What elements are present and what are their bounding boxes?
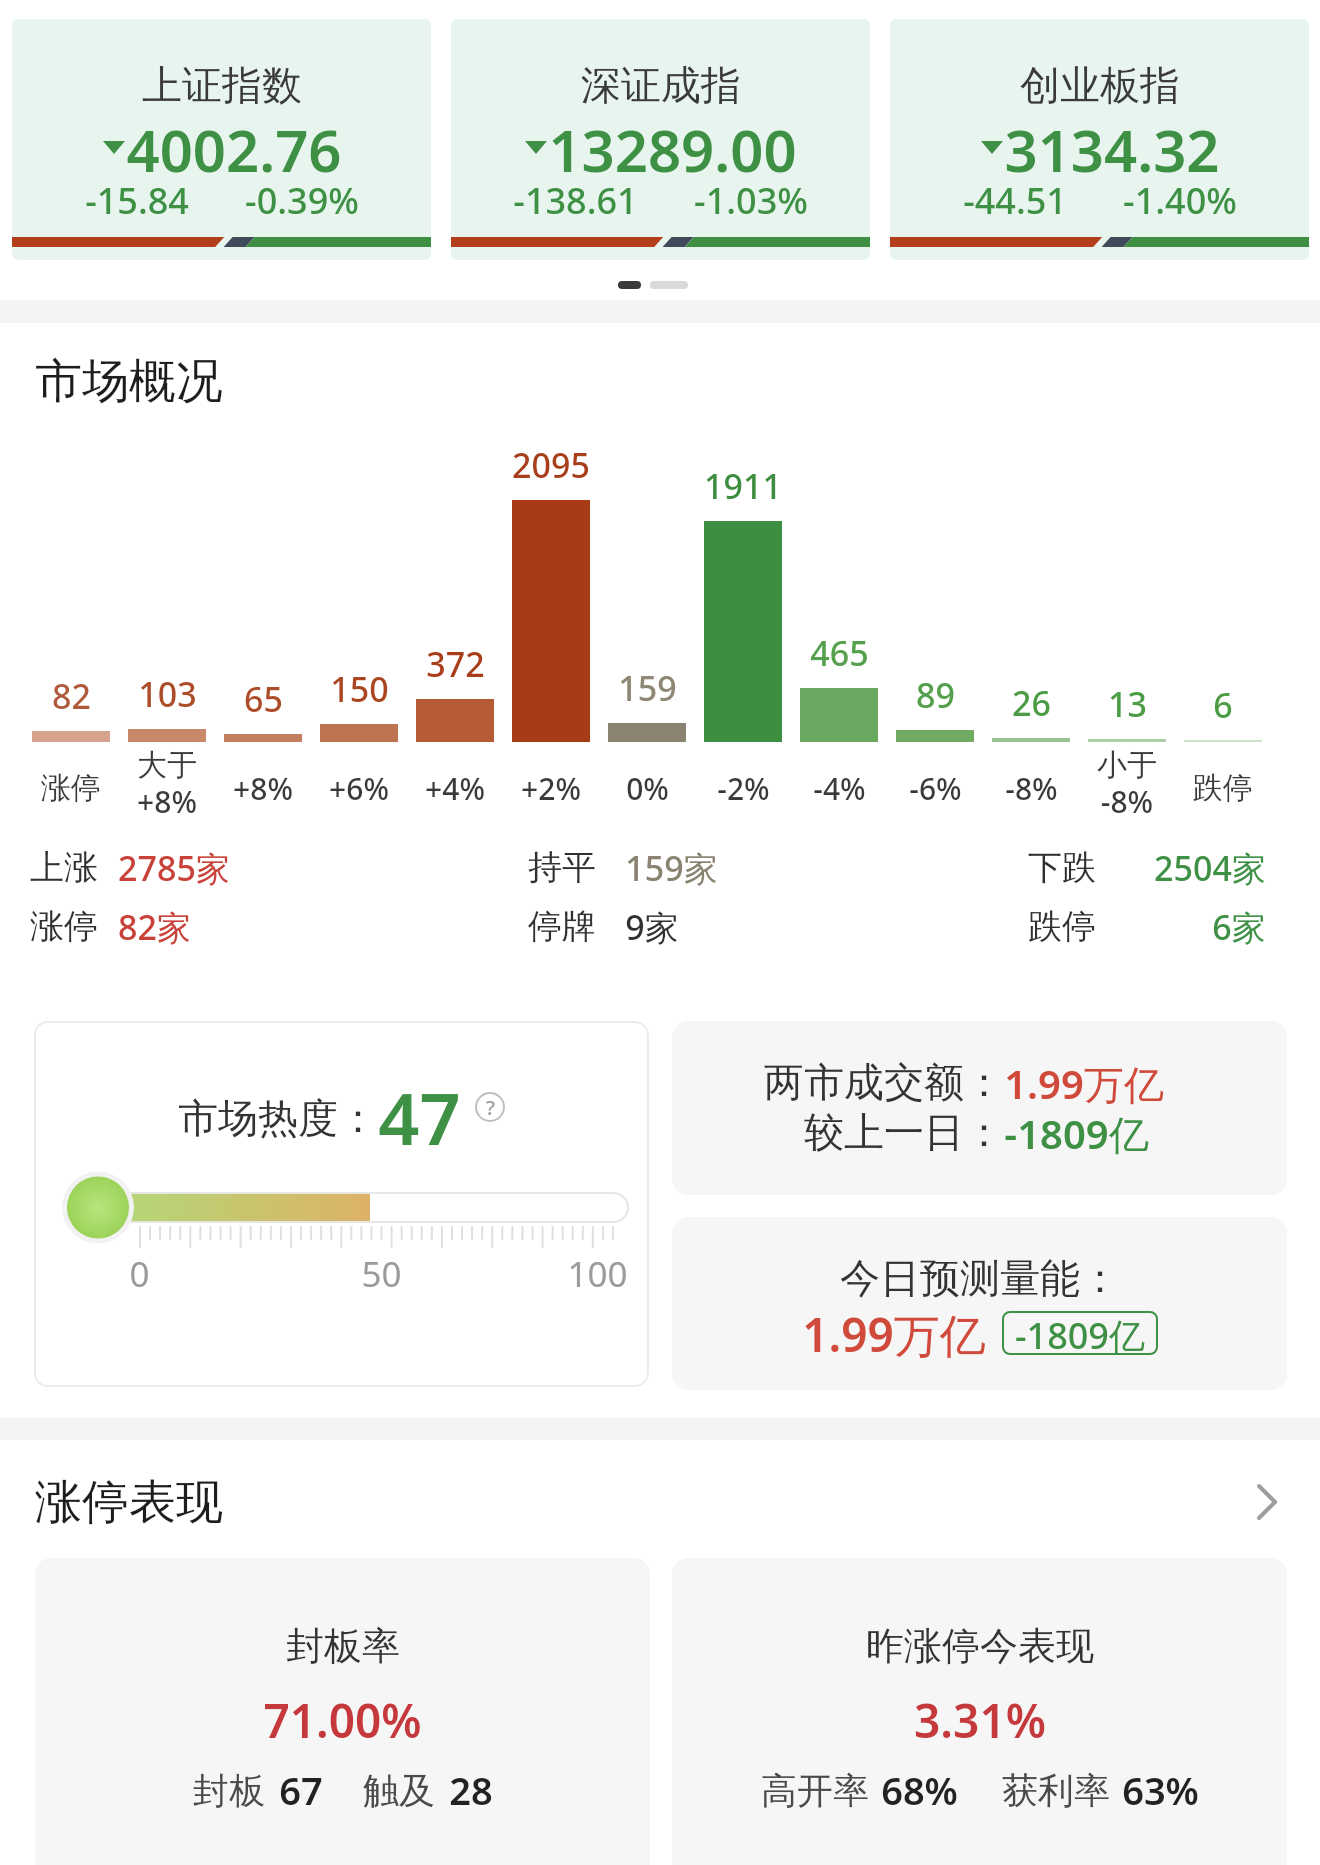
staticText: -2%	[717, 768, 770, 809]
staticText: 13289.00	[548, 110, 797, 182]
staticText: 较上一日：	[804, 1107, 1004, 1157]
staticText: 持平	[528, 846, 596, 889]
staticText: -1809亿	[1015, 1311, 1145, 1355]
button[interactable]: 创业板指	[890, 19, 1309, 260]
staticText: 涨停	[41, 769, 101, 807]
staticText: 68%	[881, 1764, 958, 1816]
staticText: 0	[129, 1250, 150, 1292]
staticText: 82家	[118, 904, 191, 948]
staticText: 下跌	[1028, 846, 1096, 889]
staticText: 6	[1213, 682, 1233, 724]
staticText: 65	[244, 676, 283, 718]
staticText: 372	[426, 641, 485, 683]
staticText: 159	[618, 665, 677, 707]
staticText: -15.84	[85, 176, 189, 222]
staticText: 28	[449, 1764, 493, 1816]
staticText: 67	[279, 1764, 323, 1816]
staticText: -1809亿	[1004, 1106, 1149, 1158]
staticText: 63%	[1122, 1764, 1199, 1816]
staticText: 47	[378, 1069, 461, 1145]
staticText: 150	[330, 666, 389, 708]
staticText: 市场概况	[35, 352, 223, 410]
staticText: 465	[810, 630, 869, 672]
staticText: 71.00%	[263, 1689, 422, 1743]
button[interactable]: 涨停表现	[0, 1473, 1320, 1531]
staticText: 封板	[193, 1768, 265, 1813]
staticText: 2785家	[118, 845, 230, 889]
staticText: 100	[567, 1250, 628, 1292]
staticText: -1.03%	[694, 176, 808, 222]
staticText: 昨涨停今表现	[866, 1622, 1094, 1670]
staticText: +2%	[521, 768, 581, 809]
button[interactable]: 上证指数	[12, 19, 431, 260]
staticText: -4%	[813, 768, 866, 809]
button[interactable]: 深证成指	[451, 19, 870, 260]
staticText: 触及	[363, 1768, 435, 1813]
staticText: 小于 -8%	[1097, 746, 1157, 822]
staticText: 今日预测量能：	[840, 1253, 1120, 1303]
staticText: 跌停	[1028, 905, 1096, 948]
staticText: -1.40%	[1123, 176, 1237, 222]
staticText: 4002.76	[126, 110, 342, 182]
staticText: 1911	[704, 463, 782, 505]
staticText: 89	[916, 672, 955, 714]
staticText: +6%	[329, 768, 389, 809]
staticText: 1.99万亿	[802, 1303, 986, 1363]
staticText: 市场热度：	[178, 1093, 378, 1143]
staticText: 跌停	[1193, 769, 1253, 807]
staticText: 获利率	[1002, 1768, 1110, 1813]
staticText: 6家	[1212, 904, 1266, 948]
button[interactable]: 封板率	[35, 1558, 650, 1865]
staticText: 涨停	[30, 905, 98, 948]
staticText: 50	[361, 1250, 402, 1292]
staticText: 深证成指	[581, 60, 741, 110]
staticText: 封板率	[286, 1622, 400, 1670]
staticText: 停牌	[528, 905, 596, 948]
staticText: +8%	[233, 768, 293, 809]
staticText: -138.61	[513, 176, 638, 222]
staticText: 103	[138, 671, 197, 713]
staticText: 82	[52, 673, 91, 715]
staticText: 大于 +8%	[137, 746, 197, 822]
staticText: 2095	[512, 442, 590, 484]
staticText: 创业板指	[1020, 60, 1180, 110]
staticText: 3134.32	[1004, 110, 1220, 182]
staticText: ?	[486, 1094, 495, 1121]
staticText: 26	[1012, 680, 1051, 722]
staticText: 两市成交额：	[764, 1057, 1004, 1107]
button[interactable]: 市场热度：	[34, 1021, 649, 1387]
button[interactable]: 今日预测量能：	[672, 1217, 1287, 1390]
staticText: +4%	[425, 768, 485, 809]
staticText: 涨停表现	[35, 1473, 223, 1531]
staticText: 上涨	[30, 846, 98, 889]
staticText: 1.99万亿	[1004, 1056, 1164, 1108]
staticText: -0.39%	[245, 176, 359, 222]
staticText: 0%	[626, 768, 669, 809]
button[interactable]: 昨涨停今表现	[672, 1558, 1287, 1865]
staticText: -6%	[909, 768, 962, 809]
staticText: 3.31%	[914, 1689, 1046, 1743]
staticText: 13	[1108, 681, 1147, 723]
staticText: 高开率	[761, 1768, 869, 1813]
staticText: 9家	[625, 904, 679, 948]
staticText: 上证指数	[142, 60, 302, 110]
staticText: -8%	[1005, 768, 1058, 809]
staticText: 2504家	[1154, 845, 1266, 889]
staticText: 159家	[625, 845, 718, 889]
button[interactable]: 两市成交额：	[672, 1021, 1287, 1195]
staticText: -44.51	[963, 176, 1067, 222]
